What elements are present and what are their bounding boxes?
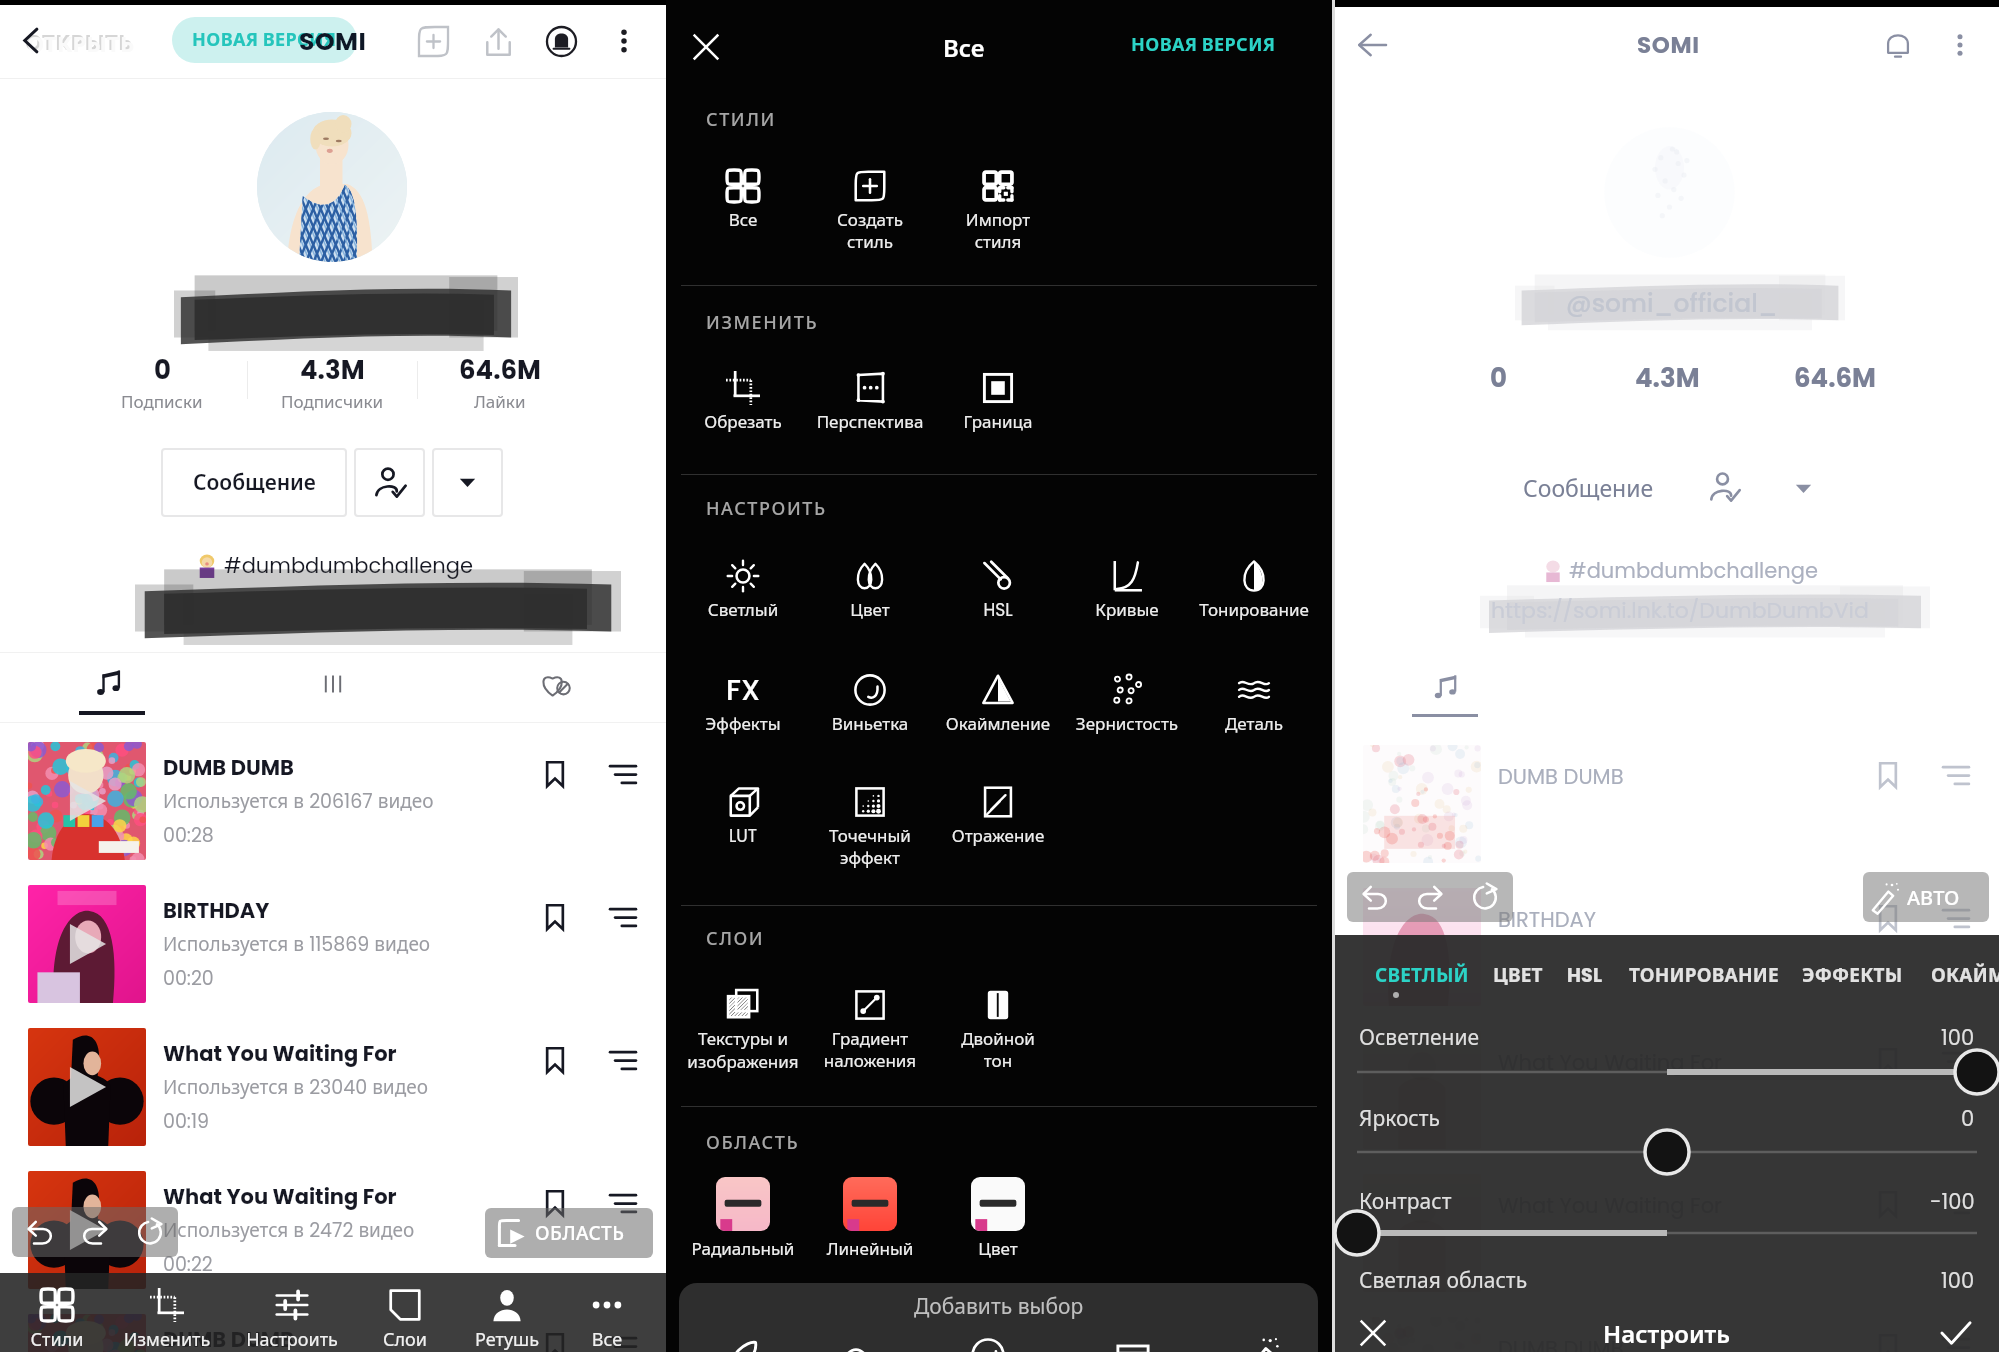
- button[interactable]: Sounds: [48, 654, 168, 714]
- button[interactable]: Undo: [12, 1207, 67, 1257]
- button[interactable]: [936, 540, 1060, 650]
- button[interactable]: Add friends: [408, 16, 458, 66]
- button[interactable]: [1065, 654, 1189, 764]
- button[interactable]: [237, 1273, 347, 1352]
- button[interactable]: [452, 1273, 562, 1352]
- button[interactable]: Reset: [1457, 872, 1512, 922]
- button[interactable]: More: [602, 16, 646, 66]
- button[interactable]: [1343, 1128, 1991, 1176]
- button[interactable]: ОБЛАСТЬ: [485, 1208, 653, 1258]
- button[interactable]: Share: [473, 16, 523, 66]
- button[interactable]: 64.6M: [420, 352, 580, 420]
- button[interactable]: ЭФФЕКТЫ: [1802, 955, 1912, 995]
- button[interactable]: Friends: [354, 448, 425, 517]
- button[interactable]: [681, 1170, 805, 1280]
- button[interactable]: [681, 969, 805, 1079]
- button[interactable]: Cancel: [1343, 1304, 1403, 1352]
- button[interactable]: Bookmark: [529, 891, 581, 943]
- button[interactable]: [0, 875, 666, 1015]
- button[interactable]: [936, 766, 1060, 876]
- button[interactable]: [552, 1273, 662, 1352]
- button[interactable]: Queue: [1930, 892, 1982, 944]
- button[interactable]: Tool: [1239, 1337, 1287, 1352]
- button[interactable]: НОВАЯ ВЕРСИЯ: [172, 17, 357, 63]
- button[interactable]: [936, 969, 1060, 1079]
- button[interactable]: More: [1938, 19, 1982, 71]
- button[interactable]: [936, 654, 1060, 764]
- button[interactable]: [808, 766, 932, 876]
- button[interactable]: Reset: [122, 1207, 177, 1257]
- button[interactable]: Queue: [1930, 1178, 1982, 1230]
- button[interactable]: [808, 969, 932, 1079]
- button[interactable]: Sounds: [1405, 663, 1485, 713]
- button[interactable]: Queue: [597, 1177, 649, 1229]
- button[interactable]: [681, 766, 805, 876]
- button[interactable]: Back: [5, 14, 57, 66]
- button[interactable]: [1192, 654, 1316, 764]
- button[interactable]: [681, 540, 805, 650]
- button[interactable]: [1192, 540, 1316, 650]
- button[interactable]: Bookmark: [529, 1177, 581, 1229]
- button[interactable]: Tool: [832, 1337, 880, 1352]
- button[interactable]: Bookmark: [529, 1320, 581, 1352]
- button[interactable]: [112, 1273, 222, 1352]
- button[interactable]: Bookmark: [1862, 749, 1914, 801]
- button[interactable]: Friends: [1694, 459, 1754, 515]
- button[interactable]: Notifications: [536, 16, 586, 66]
- button[interactable]: Сообщение: [161, 448, 347, 517]
- button[interactable]: Close: [678, 19, 734, 75]
- button[interactable]: [808, 654, 932, 764]
- button[interactable]: Queue: [597, 1320, 649, 1352]
- button[interactable]: [681, 150, 805, 260]
- button[interactable]: [1343, 1048, 1991, 1096]
- button[interactable]: АВТО: [1863, 872, 1989, 922]
- button[interactable]: Redo: [67, 1207, 122, 1257]
- button[interactable]: Queue: [1930, 749, 1982, 801]
- button[interactable]: Redo: [1402, 872, 1457, 922]
- button[interactable]: Добавить выбор: [679, 1283, 1318, 1352]
- button[interactable]: Queue: [597, 1034, 649, 1086]
- button[interactable]: Undo: [1347, 872, 1402, 922]
- button[interactable]: [808, 540, 932, 650]
- button[interactable]: [808, 1170, 932, 1280]
- button[interactable]: [0, 732, 666, 872]
- button[interactable]: Confirm: [1925, 1304, 1987, 1352]
- button[interactable]: ТОНИРОВАНИЕ: [1629, 955, 1789, 995]
- button[interactable]: ЦВЕТ: [1493, 955, 1551, 995]
- button[interactable]: [257, 112, 407, 262]
- button[interactable]: Liked: [496, 654, 616, 714]
- button[interactable]: More options: [1781, 466, 1825, 510]
- button[interactable]: Сообщение: [1478, 462, 1698, 512]
- button[interactable]: HSL: [1567, 955, 1613, 995]
- button[interactable]: [808, 150, 932, 260]
- button[interactable]: [350, 1273, 460, 1352]
- button[interactable]: НОВАЯ ВЕРСИЯ: [1127, 28, 1280, 62]
- button[interactable]: Back: [1344, 17, 1400, 73]
- button[interactable]: [681, 654, 805, 764]
- button[interactable]: [936, 150, 1060, 260]
- button[interactable]: Queue: [597, 748, 649, 800]
- button[interactable]: [936, 1170, 1060, 1280]
- button[interactable]: Queue: [597, 891, 649, 943]
- button[interactable]: Notifications: [1872, 19, 1924, 71]
- button[interactable]: Bookmark: [1862, 892, 1914, 944]
- button[interactable]: [681, 352, 805, 462]
- button[interactable]: [1065, 540, 1189, 650]
- button[interactable]: ОКАЙМ: [1931, 955, 1999, 995]
- button[interactable]: Bookmark: [529, 748, 581, 800]
- button[interactable]: Queue: [1930, 1035, 1982, 1087]
- button[interactable]: Videos: [273, 654, 393, 714]
- button[interactable]: [808, 352, 932, 462]
- button[interactable]: Tool: [1109, 1337, 1157, 1352]
- button[interactable]: Tool: [964, 1337, 1012, 1352]
- button[interactable]: [0, 1018, 666, 1158]
- button[interactable]: Tool: [719, 1337, 767, 1352]
- button[interactable]: Bookmark: [1862, 1035, 1914, 1087]
- button[interactable]: 4.3M: [252, 352, 412, 420]
- button[interactable]: Bookmark: [529, 1034, 581, 1086]
- button[interactable]: Queue: [1930, 1321, 1982, 1352]
- button[interactable]: [936, 352, 1060, 462]
- button[interactable]: 0: [82, 352, 242, 420]
